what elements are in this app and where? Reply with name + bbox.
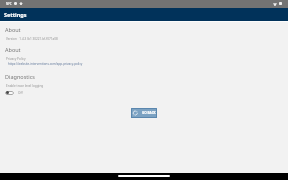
- button[interactable]: Off: [4, 88, 21, 97]
- staticText: GO BACK: [142, 111, 156, 115]
- staticText: About: [5, 26, 21, 33]
- staticText: Privacy Policy: [6, 57, 26, 61]
- staticText: NFC: [6, 2, 12, 6]
- staticText: Settings: [4, 11, 27, 18]
- button[interactable]: GO BACK: [131, 108, 157, 118]
- button[interactable]: https://website-interventions.com/app-pr…: [8, 62, 83, 66]
- staticText: Enable trace level logging: [6, 84, 44, 88]
- staticText: Diagnostics: [5, 73, 35, 80]
- staticText: Version 1.4.3 (b1 30221.bf-f071a08: [6, 37, 58, 41]
- staticText: Off: [18, 91, 23, 95]
- staticText: About: [5, 46, 21, 53]
